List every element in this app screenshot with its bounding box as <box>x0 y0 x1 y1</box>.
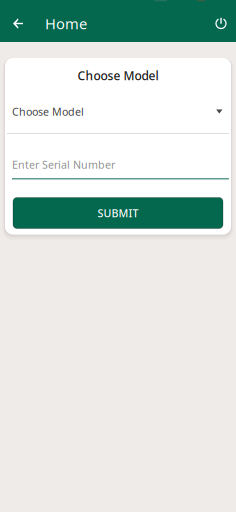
staticText: Choose Model <box>77 67 158 83</box>
staticText: Home <box>45 14 87 33</box>
staticText: Choose Model <box>12 104 84 119</box>
button[interactable]: Power <box>208 6 234 40</box>
button[interactable]: Back <box>6 6 30 40</box>
staticText: Enter Serial Number <box>12 157 115 172</box>
button[interactable]: Choose Model <box>5 82 231 134</box>
button[interactable]: SUBMIT <box>13 197 223 228</box>
staticText: SUBMIT <box>97 206 138 220</box>
